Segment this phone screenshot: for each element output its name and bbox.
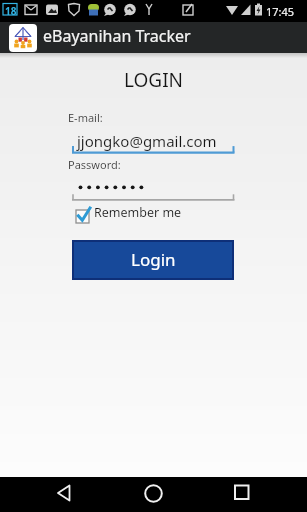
staticText: Login: [131, 248, 176, 271]
staticText: 18: [5, 4, 17, 18]
staticText: Password:: [68, 157, 121, 172]
button[interactable]: [223, 477, 260, 512]
staticText: Remember me: [94, 204, 182, 221]
staticText: LOGIN: [0, 67, 307, 93]
button[interactable]: Remember me: [72, 203, 184, 226]
staticText: E-mail:: [68, 110, 103, 125]
button[interactable]: jjongko@gmail.com: [70, 126, 237, 154]
button[interactable]: [47, 477, 83, 512]
staticText: 17:45: [266, 4, 295, 19]
button[interactable]: [135, 477, 172, 512]
staticText: jjongko@gmail.com: [77, 131, 217, 151]
staticText: eBayanihan Tracker: [43, 25, 191, 47]
button[interactable]: eBayanihan Tracker: [0, 22, 307, 53]
button[interactable]: [70, 174, 237, 202]
button[interactable]: Login: [73, 241, 233, 279]
